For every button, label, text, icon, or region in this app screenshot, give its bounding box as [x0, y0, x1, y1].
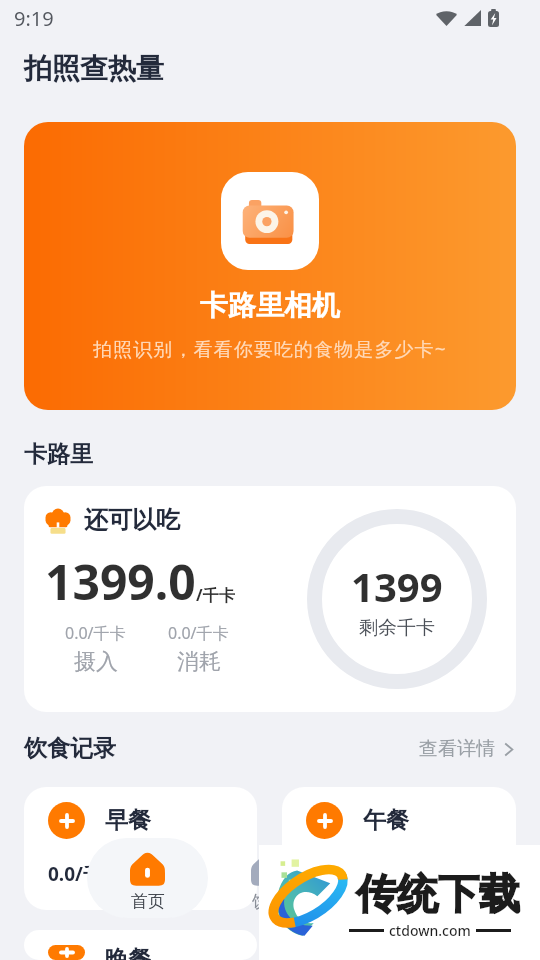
staticText: 首页	[131, 891, 165, 912]
staticText: 剩余千卡	[359, 616, 435, 640]
button[interactable]: 午餐	[282, 787, 516, 910]
staticText: 饮食记录	[24, 734, 116, 763]
button[interactable]: 晚餐	[24, 930, 257, 960]
button[interactable]: 我的	[329, 838, 450, 918]
staticText: 0.0/千卡	[168, 622, 229, 644]
staticText: ctdown.com	[389, 921, 471, 940]
staticText: 卡路里	[24, 440, 93, 469]
button[interactable]: 饮食	[208, 838, 329, 918]
staticText: 拍照查热量	[24, 51, 164, 86]
staticText: 1399.0	[45, 549, 196, 614]
staticText: 早餐	[105, 806, 151, 835]
staticText: 午餐	[363, 806, 409, 835]
staticText: 晚餐	[105, 945, 151, 960]
button[interactable]: 卡路里相机	[24, 122, 516, 410]
staticText: 9:19	[14, 5, 54, 32]
staticText: 0.0/千卡	[306, 861, 379, 887]
staticText: 0.0/千卡	[48, 861, 121, 887]
staticText: 消耗	[177, 648, 221, 676]
staticText: 传统下载	[356, 869, 520, 921]
staticText: 卡路里相机	[200, 288, 340, 323]
staticText: 1399	[351, 559, 443, 613]
staticText: 0.0/千卡	[65, 622, 126, 644]
staticText: 查看详情	[419, 737, 495, 761]
button[interactable]: 查看详情	[419, 737, 516, 761]
staticText: 拍照识别，看看你要吃的食物是多少卡~	[93, 336, 447, 362]
staticText: /千卡	[196, 584, 235, 606]
staticText: 摄入	[74, 648, 118, 676]
staticText: 还可以吃	[84, 505, 180, 535]
staticText: 我的	[373, 891, 407, 912]
button[interactable]: 加餐	[282, 930, 516, 960]
staticText: 饮食	[252, 891, 286, 912]
button[interactable]: 首页	[87, 838, 208, 918]
button[interactable]: 早餐	[24, 787, 257, 910]
